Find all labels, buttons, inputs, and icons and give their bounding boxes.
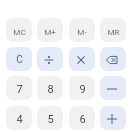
button[interactable]: Plus [100, 106, 126, 130]
staticText: 8 [47, 83, 54, 96]
staticText: 4 [16, 113, 23, 126]
staticText: 9 [79, 83, 86, 96]
staticText: 7 [16, 83, 23, 96]
staticText: MC [13, 27, 26, 36]
staticText: 5 [47, 113, 54, 126]
staticText: 6 [79, 113, 86, 126]
staticText: MR [107, 27, 120, 36]
button[interactable]: 7 [6, 76, 32, 100]
button[interactable]: Multiply [69, 47, 95, 71]
staticText: M+ [44, 27, 56, 36]
button[interactable]: 4 [6, 106, 32, 130]
button[interactable]: MR [100, 18, 126, 42]
staticText: C [16, 54, 23, 66]
button[interactable]: 8 [37, 76, 63, 100]
button[interactable]: Backspace [100, 47, 126, 71]
staticText: M- [77, 27, 87, 36]
button[interactable]: 6 [69, 106, 95, 130]
button[interactable]: MC [6, 18, 32, 42]
button[interactable]: C [6, 47, 32, 71]
button[interactable]: M- [69, 18, 95, 42]
button[interactable]: M+ [37, 18, 63, 42]
button[interactable]: Divide [37, 47, 63, 71]
button[interactable]: Minus [100, 76, 126, 100]
button[interactable]: 5 [37, 106, 63, 130]
button[interactable]: 9 [69, 76, 95, 100]
